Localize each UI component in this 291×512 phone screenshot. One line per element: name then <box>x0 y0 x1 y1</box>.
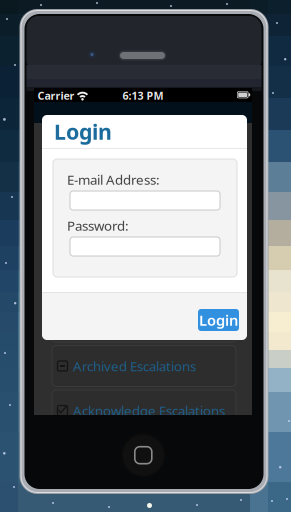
staticText: E-mail Address: <box>67 171 160 188</box>
staticText: 6:13 PM <box>122 88 163 103</box>
staticText: Archived Escalations <box>73 357 196 375</box>
button[interactable]: Acknowledge Escalations <box>52 390 236 431</box>
staticText: Acknowledge Escalations <box>73 402 225 419</box>
staticText: Login <box>54 117 112 146</box>
button[interactable]: Archived Escalations <box>52 345 236 386</box>
button[interactable]: Knowledge Escalations <box>52 301 236 342</box>
staticText: Knowledge Escalations <box>73 313 211 330</box>
staticText: Password: <box>67 217 129 234</box>
staticText: Login <box>199 310 238 330</box>
staticText: Carrier <box>38 88 75 103</box>
button[interactable]: Login <box>198 309 239 331</box>
